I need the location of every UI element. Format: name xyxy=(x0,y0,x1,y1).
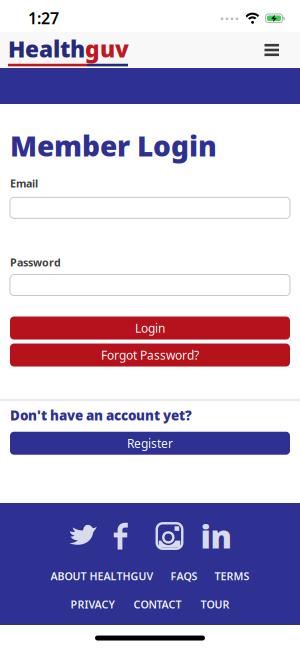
staticText: Health xyxy=(8,34,85,64)
staticText: TOUR xyxy=(200,597,229,611)
staticText: Password xyxy=(10,255,61,269)
button[interactable]: TOUR xyxy=(200,597,229,611)
button[interactable] xyxy=(69,522,97,550)
button[interactable] xyxy=(156,522,183,550)
staticText: TERMS xyxy=(214,569,249,583)
staticText: 1:27 xyxy=(28,7,59,29)
staticText: Email xyxy=(10,176,38,190)
staticText: CONTACT xyxy=(133,597,181,611)
staticText: guv xyxy=(85,34,129,64)
button[interactable] xyxy=(110,522,132,550)
button[interactable]: Forgot Password? xyxy=(10,343,290,366)
staticText: FAQS xyxy=(170,569,197,583)
button[interactable]: CONTACT xyxy=(133,597,181,611)
button[interactable]: Register xyxy=(10,432,290,455)
button[interactable]: TERMS xyxy=(214,569,249,583)
staticText: Don't have an account yet? xyxy=(10,406,192,424)
staticText: ABOUT HEALTHGUV xyxy=(50,569,153,583)
button[interactable]: ABOUT HEALTHGUV xyxy=(50,569,153,583)
staticText: Member Login xyxy=(10,127,217,164)
button[interactable] xyxy=(258,38,285,62)
button[interactable]: PRIVACY xyxy=(70,597,114,611)
staticText: Register xyxy=(127,435,173,451)
staticText: Login xyxy=(135,320,165,336)
staticText: PRIVACY xyxy=(70,597,114,611)
button[interactable]: Login xyxy=(10,316,290,339)
staticText: Forgot Password? xyxy=(101,347,199,363)
button[interactable]: FAQS xyxy=(170,569,197,583)
staticText: in xyxy=(200,515,231,557)
button[interactable]: in xyxy=(202,522,230,550)
